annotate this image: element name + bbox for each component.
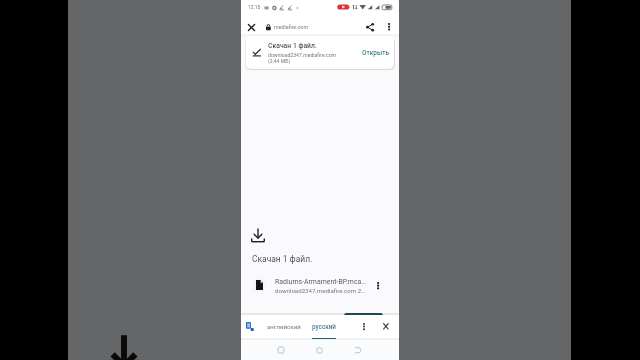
- staticText: английский: [267, 323, 301, 330]
- staticText: Скачан 1 файл.: [252, 254, 313, 264]
- button[interactable]: Back: [349, 341, 367, 359]
- button[interactable]: [246, 36, 394, 69]
- staticText: Открыть: [362, 49, 389, 57]
- staticText: mediafire.com: [274, 24, 309, 30]
- button[interactable]: Close translate bar: [379, 319, 393, 333]
- staticText: 12:15: [248, 4, 261, 10]
- button[interactable]: More options: [371, 278, 385, 292]
- button[interactable]: [245, 272, 395, 298]
- staticText: русский: [312, 323, 336, 330]
- button[interactable]: Close: [243, 19, 259, 35]
- button[interactable]: [309, 318, 339, 334]
- button[interactable]: [264, 318, 305, 334]
- button[interactable]: Recent apps: [272, 341, 290, 359]
- staticText: Radiums-Armament-BP.mca…: [275, 278, 366, 286]
- button[interactable]: Share: [364, 21, 376, 33]
- button[interactable]: [357, 45, 389, 59]
- button[interactable]: Home: [310, 341, 328, 359]
- staticText: download2347.mediafire.com 2…: [275, 287, 366, 294]
- button[interactable]: More options: [357, 319, 371, 333]
- staticText: download2347.mediafire.com: [268, 52, 337, 58]
- staticText: (2,44 МБ): [268, 58, 291, 64]
- button[interactable]: More options: [383, 21, 395, 33]
- staticText: Скачан 1 файл.: [268, 42, 317, 50]
